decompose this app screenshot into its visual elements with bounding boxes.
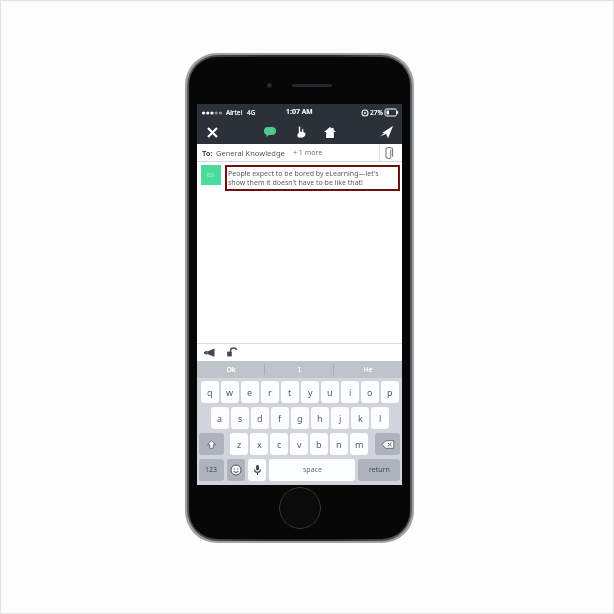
button[interactable]: He — [334, 361, 402, 378]
staticText: o — [367, 386, 373, 398]
staticText: e — [247, 386, 253, 398]
button[interactable]: c — [270, 433, 288, 455]
staticText: Airtel — [226, 108, 243, 117]
staticText: space — [303, 465, 322, 475]
staticText: s — [238, 412, 243, 424]
button[interactable]: Unlock — [225, 345, 239, 359]
button[interactable]: Close — [203, 123, 221, 141]
button[interactable]: 123 — [199, 459, 224, 481]
staticText: j — [339, 412, 342, 424]
button[interactable]: Announce — [202, 345, 216, 359]
button[interactable]: y — [301, 381, 319, 403]
button[interactable]: o — [361, 381, 379, 403]
staticText: z — [237, 438, 242, 450]
button[interactable]: I — [265, 361, 333, 378]
staticText: n — [336, 438, 342, 450]
button[interactable]: i — [341, 381, 359, 403]
button[interactable]: Chat — [260, 122, 280, 142]
staticText: People expect to be bored by eLearning—l… — [228, 169, 397, 187]
button[interactable]: t — [281, 381, 299, 403]
button[interactable]: f — [271, 407, 289, 429]
button[interactable]: Send — [376, 122, 396, 142]
button[interactable]: v — [290, 433, 308, 455]
button[interactable]: e — [241, 381, 259, 403]
button[interactable]: d — [251, 407, 269, 429]
button[interactable]: b — [310, 433, 328, 455]
staticText: g — [297, 412, 303, 424]
button[interactable]: g — [291, 407, 309, 429]
staticText: b — [316, 438, 322, 450]
staticText: d — [257, 412, 263, 424]
button[interactable]: j — [331, 407, 349, 429]
button[interactable]: m — [350, 433, 368, 455]
button[interactable]: p — [381, 381, 399, 403]
button[interactable]: l — [371, 407, 389, 429]
button[interactable]: Backspace — [375, 433, 400, 455]
button[interactable]: k — [351, 407, 369, 429]
staticText: c — [277, 438, 282, 450]
staticText: Ok — [226, 365, 236, 375]
staticText: I — [298, 365, 301, 375]
button[interactable]: Shift — [199, 433, 224, 455]
button[interactable]: space — [269, 459, 355, 481]
staticText: t — [288, 386, 292, 398]
staticText: To: — [202, 148, 213, 158]
staticText: 123 — [205, 465, 218, 475]
staticText: BS — [207, 171, 215, 179]
staticText: p — [387, 386, 393, 398]
staticText: w — [226, 386, 234, 398]
button[interactable]: Home — [320, 122, 340, 142]
staticText: q — [207, 386, 213, 398]
button[interactable]: Emoji — [227, 459, 245, 481]
button[interactable]: People expect to be bored by eLearning—l… — [228, 167, 397, 189]
button[interactable]: return — [358, 459, 400, 481]
staticText: + 1 more — [293, 148, 323, 158]
button[interactable]: w — [221, 381, 239, 403]
staticText: x — [257, 438, 262, 450]
staticText: a — [217, 412, 223, 424]
staticText: f — [278, 412, 282, 424]
button[interactable]: z — [230, 433, 248, 455]
button[interactable]: s — [231, 407, 249, 429]
staticText: m — [355, 438, 364, 450]
staticText: He — [363, 365, 373, 375]
button[interactable]: Ok — [197, 361, 264, 378]
button[interactable]: r — [261, 381, 279, 403]
staticText: k — [358, 412, 363, 424]
button[interactable]: a — [211, 407, 229, 429]
staticText: 27% — [370, 108, 383, 117]
button[interactable]: u — [321, 381, 339, 403]
staticText: l — [379, 412, 382, 424]
button[interactable]: Poll — [290, 122, 310, 142]
staticText: u — [327, 386, 333, 398]
button[interactable]: Home button — [279, 487, 321, 529]
staticText: return — [369, 465, 390, 475]
staticText: v — [297, 438, 302, 450]
staticText: h — [317, 412, 323, 424]
button[interactable]: Voice input — [248, 459, 266, 481]
staticText: 4G — [247, 108, 256, 117]
staticText: y — [308, 386, 313, 398]
button[interactable]: x — [250, 433, 268, 455]
staticText: 1:07 AM — [286, 107, 313, 117]
staticText: r — [268, 386, 272, 398]
button[interactable]: q — [201, 381, 219, 403]
button[interactable]: n — [330, 433, 348, 455]
staticText: General Knowledge — [216, 148, 285, 158]
button[interactable]: Attach — [381, 145, 397, 161]
staticText: i — [349, 386, 352, 398]
button[interactable]: h — [311, 407, 329, 429]
